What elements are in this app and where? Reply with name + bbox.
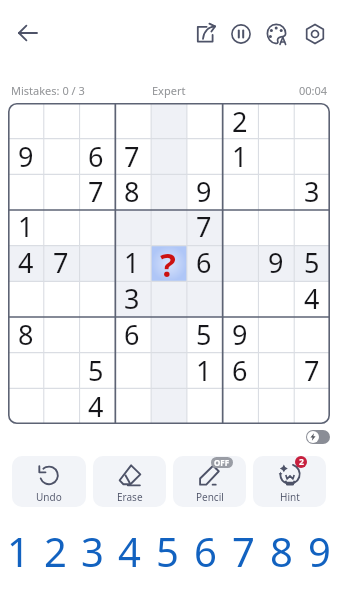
button[interactable]: 6: [78, 138, 114, 173]
button[interactable]: [186, 138, 222, 173]
button[interactable]: [150, 352, 186, 388]
button[interactable]: Theme: [258, 15, 296, 53]
button[interactable]: [150, 138, 186, 173]
button[interactable]: 3: [294, 173, 330, 208]
button[interactable]: [8, 388, 43, 424]
button[interactable]: [114, 388, 150, 424]
button[interactable]: [294, 316, 330, 352]
button[interactable]: 5: [186, 316, 222, 352]
button[interactable]: [258, 316, 294, 352]
button[interactable]: [114, 352, 150, 388]
button[interactable]: [114, 208, 150, 244]
button[interactable]: [78, 103, 114, 138]
button[interactable]: [258, 388, 294, 424]
button[interactable]: 6: [114, 316, 150, 352]
button[interactable]: [150, 103, 186, 138]
button[interactable]: 7: [78, 173, 114, 208]
button[interactable]: [294, 388, 330, 424]
button[interactable]: [258, 173, 294, 208]
button[interactable]: [222, 388, 258, 424]
button[interactable]: [43, 352, 78, 388]
button[interactable]: [78, 280, 114, 316]
button[interactable]: 9: [222, 316, 258, 352]
button[interactable]: 6: [186, 244, 222, 280]
button[interactable]: [222, 173, 258, 208]
button[interactable]: [258, 138, 294, 173]
button[interactable]: [294, 103, 330, 138]
button[interactable]: 2: [222, 103, 258, 138]
button[interactable]: [114, 103, 150, 138]
button[interactable]: [186, 388, 222, 424]
button[interactable]: [150, 388, 186, 424]
button[interactable]: [43, 208, 78, 244]
button[interactable]: [258, 103, 294, 138]
button[interactable]: Settings: [296, 15, 334, 53]
button[interactable]: [43, 280, 78, 316]
button[interactable]: 1: [0, 522, 37, 580]
button[interactable]: 4: [111, 522, 148, 580]
button[interactable]: Erase: [93, 456, 166, 507]
button[interactable]: 5: [78, 352, 114, 388]
button[interactable]: 9: [186, 173, 222, 208]
button[interactable]: [43, 103, 78, 138]
button[interactable]: 6: [222, 352, 258, 388]
button[interactable]: 5: [148, 522, 186, 580]
button[interactable]: 3: [114, 280, 150, 316]
button[interactable]: [150, 280, 186, 316]
button[interactable]: [150, 208, 186, 244]
button[interactable]: [43, 316, 78, 352]
button[interactable]: 4: [78, 388, 114, 424]
button[interactable]: 3: [74, 522, 111, 580]
button[interactable]: 7: [224, 522, 262, 580]
button[interactable]: 7: [43, 244, 78, 280]
button[interactable]: 2: [37, 522, 74, 580]
button[interactable]: 8: [262, 522, 300, 580]
button[interactable]: 5: [294, 244, 330, 280]
button[interactable]: [43, 388, 78, 424]
button[interactable]: Hint: [253, 456, 326, 507]
button[interactable]: [294, 138, 330, 173]
button[interactable]: [78, 244, 114, 280]
button[interactable]: [222, 244, 258, 280]
button[interactable]: 8: [114, 173, 150, 208]
button[interactable]: [222, 280, 258, 316]
button[interactable]: [8, 352, 43, 388]
button[interactable]: ?: [150, 244, 186, 280]
button[interactable]: 7: [186, 208, 222, 244]
button[interactable]: [78, 208, 114, 244]
button[interactable]: [78, 316, 114, 352]
button[interactable]: [258, 280, 294, 316]
button[interactable]: [186, 280, 222, 316]
button[interactable]: [258, 352, 294, 388]
button[interactable]: 9: [8, 138, 43, 173]
button[interactable]: [186, 103, 222, 138]
button[interactable]: [150, 316, 186, 352]
button[interactable]: 1: [222, 138, 258, 173]
button[interactable]: [8, 103, 43, 138]
button[interactable]: 8: [8, 316, 43, 352]
button[interactable]: [222, 208, 258, 244]
button[interactable]: 7: [114, 138, 150, 173]
button[interactable]: 4: [294, 280, 330, 316]
button[interactable]: [258, 208, 294, 244]
button[interactable]: 1: [8, 208, 43, 244]
button[interactable]: Back: [8, 13, 48, 53]
button[interactable]: 1: [186, 352, 222, 388]
button[interactable]: 4: [8, 244, 43, 280]
button[interactable]: [43, 173, 78, 208]
button[interactable]: [8, 173, 43, 208]
button[interactable]: Pause: [222, 15, 260, 53]
button[interactable]: 7: [294, 352, 330, 388]
button[interactable]: 6: [186, 522, 224, 580]
button[interactable]: Pencil: [173, 456, 246, 507]
button[interactable]: [8, 280, 43, 316]
button[interactable]: Share: [186, 15, 224, 53]
button[interactable]: [43, 138, 78, 173]
button[interactable]: 9: [300, 522, 338, 580]
button[interactable]: [294, 208, 330, 244]
button[interactable]: 1: [114, 244, 150, 280]
button[interactable]: 9: [258, 244, 294, 280]
button[interactable]: [150, 173, 186, 208]
button[interactable]: Auto check: [306, 430, 330, 444]
button[interactable]: Undo: [12, 456, 86, 507]
